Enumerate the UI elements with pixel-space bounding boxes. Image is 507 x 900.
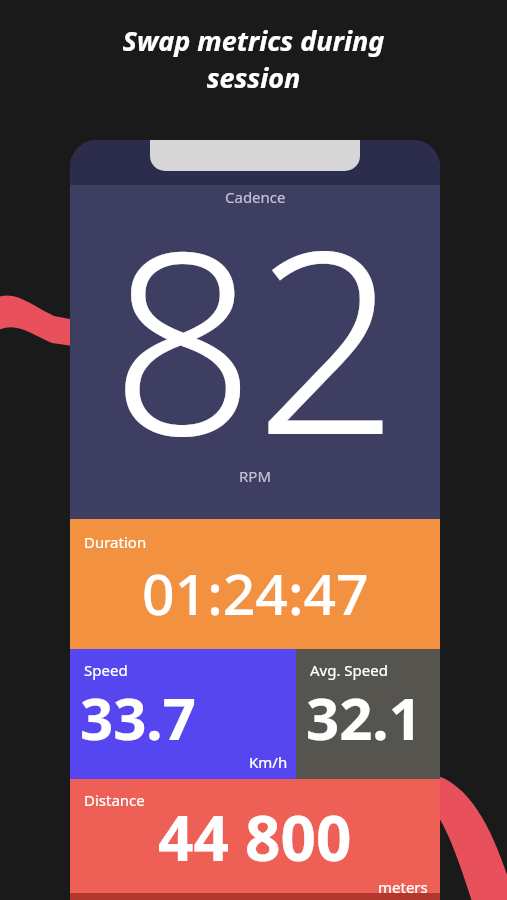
button[interactable]: Duration (70, 519, 440, 649)
staticText: Speed (84, 660, 128, 680)
staticText: Cadence (225, 187, 286, 207)
staticText: 33.7 (80, 678, 196, 757)
staticText: Avg. Speed (310, 660, 388, 680)
staticText: meters (378, 877, 428, 897)
staticText: RPM (239, 466, 272, 486)
staticText: 32.1 (306, 678, 422, 757)
button[interactable]: Cadence (70, 140, 440, 519)
staticText: Km/h (249, 752, 288, 772)
button[interactable]: Speed (70, 649, 296, 779)
staticText: 82 (111, 165, 399, 508)
staticText: 44 800 (158, 795, 352, 879)
staticText: Distance (84, 790, 145, 810)
staticText: Duration (84, 532, 147, 552)
staticText: Swap metrics during session (0, 22, 507, 96)
button[interactable]: Distance (70, 779, 440, 900)
button[interactable]: Avg. Speed (296, 649, 440, 779)
staticText: 01:24:47 (142, 554, 369, 632)
